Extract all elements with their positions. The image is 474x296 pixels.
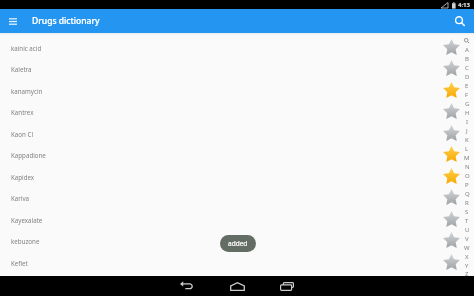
staticText: E	[465, 82, 469, 90]
staticText: Keflet	[11, 259, 28, 267]
button[interactable]: S	[463, 207, 471, 216]
button[interactable]	[441, 80, 462, 101]
button[interactable]	[441, 123, 462, 144]
staticText: D	[465, 73, 470, 81]
button[interactable]: J	[463, 126, 471, 135]
button[interactable]: Kantrex	[0, 101, 462, 122]
button[interactable]	[441, 58, 462, 79]
button[interactable]: Kariva	[0, 187, 462, 208]
button[interactable]	[441, 209, 462, 230]
button[interactable]	[441, 230, 462, 251]
button[interactable]	[212, 276, 262, 296]
staticText: Kaletra	[11, 65, 32, 73]
button[interactable]: Q	[463, 189, 471, 198]
button[interactable]	[441, 187, 462, 208]
staticText: J	[466, 127, 468, 135]
staticText: R	[465, 199, 469, 207]
button[interactable]: N	[463, 162, 471, 171]
button[interactable]: B	[463, 54, 471, 63]
button[interactable]: Y	[463, 261, 471, 270]
button[interactable]: kainic acid	[0, 37, 462, 58]
staticText: kebuzone	[11, 237, 40, 245]
button[interactable]: E	[463, 81, 471, 90]
staticText: Z	[465, 270, 469, 276]
button[interactable]: Z	[463, 270, 471, 276]
button[interactable]	[441, 101, 462, 122]
staticText: H	[465, 109, 470, 117]
button[interactable]: Keflet	[0, 252, 462, 273]
staticText: F	[465, 91, 469, 99]
staticText: S	[465, 208, 469, 216]
staticText: B	[465, 55, 469, 63]
button[interactable]	[262, 276, 312, 296]
button[interactable]: M	[463, 153, 471, 162]
button[interactable]	[446, 9, 474, 33]
button[interactable]	[0, 9, 26, 33]
button[interactable]: Kapidex	[0, 166, 462, 187]
button[interactable]: kebuzone	[0, 230, 462, 251]
button[interactable]: X	[463, 252, 471, 261]
staticText: P	[465, 181, 469, 189]
staticText: O	[465, 172, 470, 180]
staticText: T	[465, 217, 469, 225]
button[interactable]: G	[463, 99, 471, 108]
staticText: C	[465, 64, 469, 72]
button[interactable]	[441, 166, 462, 187]
button[interactable]: W	[463, 243, 471, 252]
staticText: G	[465, 100, 470, 108]
staticText: Kaon Cl	[11, 130, 33, 138]
staticText: Drugs dictionary	[32, 15, 100, 27]
staticText: Kantrex	[11, 108, 34, 116]
button[interactable]: Kaon Cl	[0, 123, 462, 144]
button[interactable]: F	[463, 90, 471, 99]
staticText: L	[465, 145, 469, 153]
staticText: Q	[465, 190, 470, 198]
button[interactable]: Kayexalate	[0, 209, 462, 230]
button[interactable]: P	[463, 180, 471, 189]
staticText: Kariva	[11, 194, 30, 202]
button[interactable]: C	[463, 63, 471, 72]
staticText: M	[464, 154, 470, 162]
button[interactable]: D	[463, 72, 471, 81]
button[interactable]: K	[463, 135, 471, 144]
staticText: K	[465, 136, 469, 144]
button[interactable]	[441, 144, 462, 165]
staticText: kainic acid	[11, 44, 42, 52]
button[interactable]: kanamycin	[0, 80, 462, 101]
button[interactable]: R	[463, 198, 471, 207]
button[interactable]: Kappadione	[0, 144, 462, 165]
staticText: V	[465, 235, 469, 243]
button[interactable]	[162, 276, 212, 296]
button[interactable]	[441, 37, 462, 58]
button[interactable]: T	[463, 216, 471, 225]
staticText: A	[465, 46, 469, 54]
button[interactable]: A	[463, 45, 471, 54]
staticText: N	[465, 163, 470, 171]
button[interactable]: I	[463, 117, 471, 126]
staticText: X	[465, 253, 469, 261]
button[interactable]: O	[463, 171, 471, 180]
staticText: 4:13	[458, 1, 470, 9]
staticText: I	[466, 118, 469, 126]
button[interactable]: V	[463, 234, 471, 243]
staticText: Kappadione	[11, 151, 46, 159]
button[interactable]: U	[463, 225, 471, 234]
staticText: U	[465, 226, 470, 234]
staticText: Kayexalate	[11, 216, 43, 224]
staticText: kanamycin	[11, 87, 43, 95]
button[interactable]: L	[463, 144, 471, 153]
staticText: added	[228, 239, 248, 248]
staticText: W	[464, 244, 470, 252]
button[interactable]: H	[463, 108, 471, 117]
staticText: Y	[465, 262, 469, 270]
button[interactable]: Kaletra	[0, 58, 462, 79]
button[interactable]	[441, 252, 462, 273]
staticText: Kapidex	[11, 173, 35, 181]
